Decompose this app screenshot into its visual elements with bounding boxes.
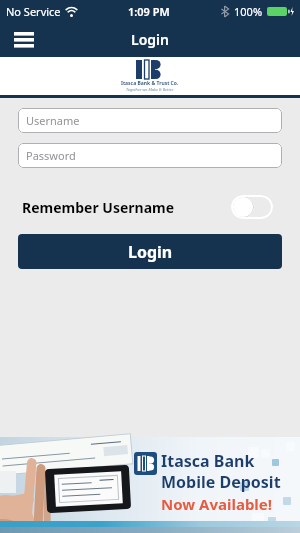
staticText: No Service [6,4,61,19]
staticText: Login [131,30,169,49]
staticText: Username [26,113,80,128]
button[interactable]: Password [18,143,282,168]
staticText: 100% [234,4,263,19]
staticText: Login [128,241,173,263]
staticText: Now Available! [161,494,273,514]
staticText: Remember Username [22,198,175,217]
staticText: Together we Make It Better [126,87,174,92]
button[interactable]: Login [18,234,282,269]
button[interactable] [231,195,273,219]
button[interactable]: Itasca Bank [0,437,300,533]
staticText: 1:09 PM [128,4,170,19]
staticText: Mobile Deposit [161,471,281,493]
button[interactable] [8,26,40,54]
staticText: Password [26,148,76,163]
staticText: Itasca Bank [161,450,255,472]
staticText: Itasca Bank & Trust Co. [121,80,179,87]
button[interactable]: Username [18,108,282,133]
